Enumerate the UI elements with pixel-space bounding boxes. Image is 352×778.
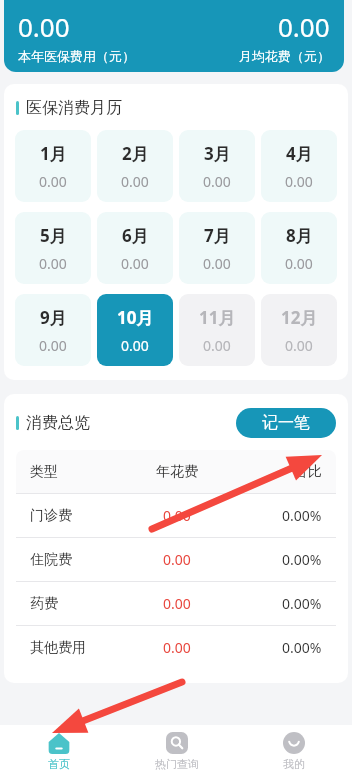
button[interactable]: 药费: [16, 582, 336, 625]
staticText: 热门查询: [155, 757, 199, 771]
staticText: 6月: [122, 224, 149, 247]
button[interactable]: 我的: [235, 725, 352, 778]
staticText: 1月: [40, 142, 67, 165]
staticText: 9月: [40, 306, 67, 329]
staticText: 4月: [286, 142, 313, 165]
staticText: 0.00: [278, 9, 330, 44]
staticText: 年花费: [156, 463, 198, 481]
button[interactable]: 11月: [179, 294, 255, 366]
button[interactable]: 其他费用: [16, 626, 336, 669]
staticText: 消费总览: [26, 413, 90, 433]
staticText: 11月: [199, 306, 236, 329]
button[interactable]: 12月: [261, 294, 337, 366]
button[interactable]: 记一笔: [236, 408, 336, 438]
staticText: 首页: [48, 757, 70, 771]
button[interactable]: 4月: [261, 130, 337, 202]
staticText: 0.00%: [282, 506, 322, 525]
staticText: 门诊费: [30, 507, 72, 525]
staticText: 0.00%: [282, 550, 322, 569]
staticText: 住院费: [30, 551, 72, 569]
staticText: 0.00: [203, 254, 231, 273]
staticText: 2月: [122, 142, 149, 165]
staticText: 0.00: [163, 638, 191, 657]
staticText: 0.00: [285, 254, 313, 273]
button[interactable]: 0.00: [4, 0, 344, 72]
staticText: 月均花费（元）: [239, 48, 330, 64]
staticText: 0.00: [121, 254, 149, 273]
staticText: 0.00%: [282, 638, 322, 657]
staticText: 类型: [30, 463, 58, 481]
staticText: 0.00: [163, 550, 191, 569]
staticText: 0.00: [121, 172, 149, 191]
staticText: 0.00: [39, 254, 67, 273]
staticText: 0.00: [285, 172, 313, 191]
staticText: 0.00: [18, 9, 70, 44]
button[interactable]: 住院费: [16, 538, 336, 581]
staticText: 0.00: [39, 172, 67, 191]
staticText: 记一笔: [262, 413, 310, 433]
button[interactable]: 10月: [97, 294, 173, 366]
staticText: 8月: [286, 224, 313, 247]
button[interactable]: 6月: [97, 212, 173, 284]
staticText: 3月: [204, 142, 231, 165]
staticText: 0.00%: [282, 594, 322, 613]
button[interactable]: 1月: [15, 130, 91, 202]
button[interactable]: 门诊费: [16, 494, 336, 537]
button[interactable]: 首页: [0, 725, 118, 778]
staticText: 0.00: [163, 506, 191, 525]
button[interactable]: 类型: [16, 450, 336, 493]
staticText: 0.00: [121, 336, 149, 355]
staticText: 我的: [283, 757, 305, 771]
button[interactable]: 8月: [261, 212, 337, 284]
staticText: 其他费用: [30, 639, 86, 657]
button[interactable]: 5月: [15, 212, 91, 284]
button[interactable]: 9月: [15, 294, 91, 366]
staticText: 本年医保费用（元）: [18, 48, 135, 64]
staticText: 0.00: [285, 336, 313, 355]
staticText: 药费: [30, 595, 58, 613]
staticText: 0.00: [163, 594, 191, 613]
button[interactable]: 3月: [179, 130, 255, 202]
staticText: 10月: [117, 306, 154, 329]
button[interactable]: 7月: [179, 212, 255, 284]
staticText: 5月: [40, 224, 67, 247]
staticText: 12月: [281, 306, 318, 329]
button[interactable]: 热门查询: [118, 725, 235, 778]
staticText: 医保消费月历: [26, 98, 122, 118]
staticText: 0.00: [203, 172, 231, 191]
staticText: 0.00: [203, 336, 231, 355]
staticText: 7月: [204, 224, 231, 247]
staticText: 0.00: [39, 336, 67, 355]
button[interactable]: 2月: [97, 130, 173, 202]
staticText: 占比: [294, 463, 322, 481]
